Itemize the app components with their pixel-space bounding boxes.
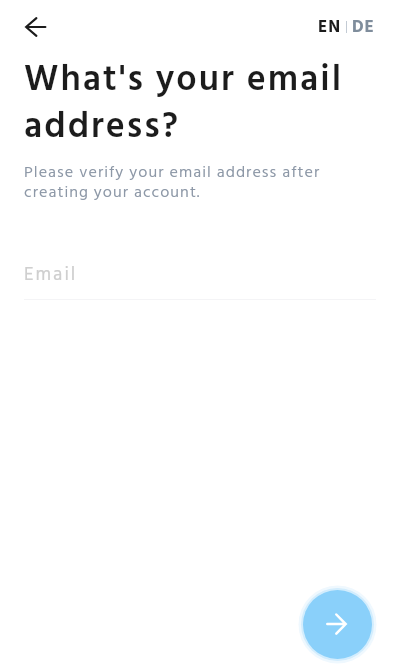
- staticText: EN: [318, 14, 341, 41]
- staticText: DE: [352, 14, 375, 41]
- button[interactable]: EN: [318, 14, 375, 41]
- button[interactable]: Email: [24, 260, 376, 300]
- staticText: Email: [24, 260, 78, 290]
- button[interactable]: Back: [13, 5, 57, 49]
- button[interactable]: Continue: [303, 590, 372, 659]
- staticText: What's your email address?: [24, 52, 344, 156]
- staticText: Please verify your email address after c…: [24, 160, 321, 206]
